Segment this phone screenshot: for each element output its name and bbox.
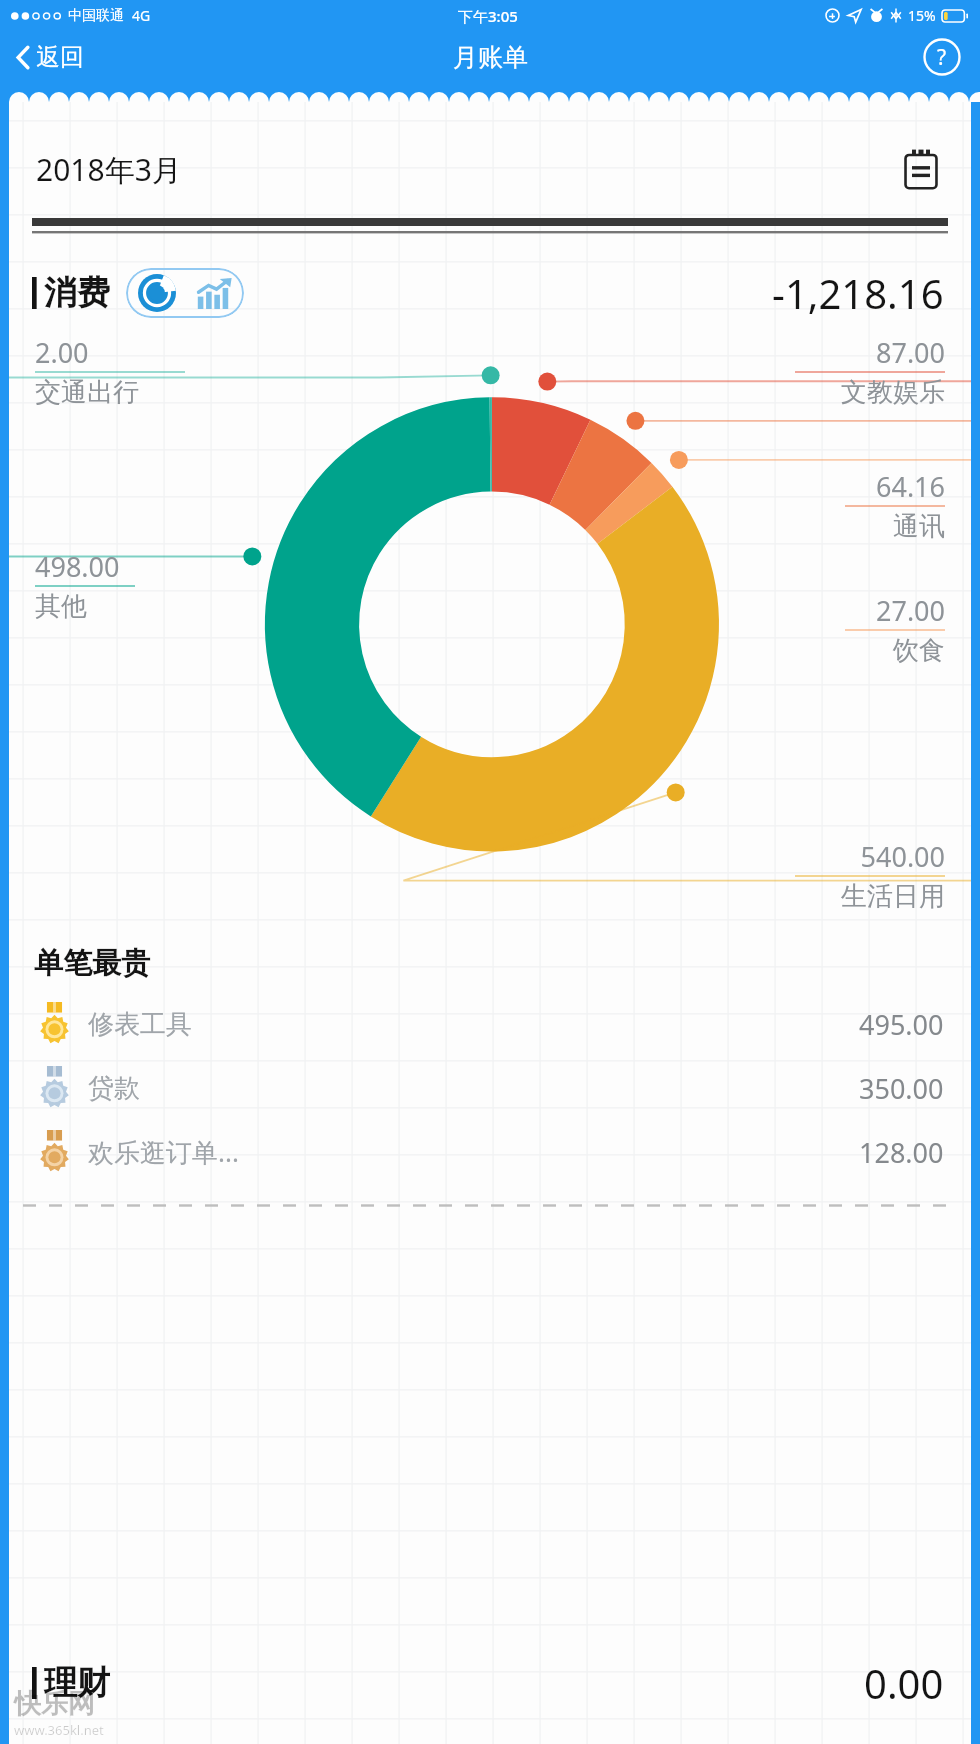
button[interactable]: 贷款: [9, 1056, 971, 1120]
staticText: 350.00: [859, 1070, 944, 1107]
staticText: 128.00: [859, 1134, 944, 1171]
staticText: 中国联通: [68, 7, 124, 25]
button[interactable]: 返回: [0, 36, 102, 78]
staticText: 修表工具: [88, 1008, 192, 1041]
staticText: 87.00: [875, 334, 945, 371]
staticText: 27.00: [875, 592, 945, 629]
staticText: 贷款: [88, 1072, 140, 1105]
staticText: 返回: [36, 42, 84, 72]
button[interactable]: Switch chart type: [126, 268, 244, 318]
staticText: 4G: [132, 6, 151, 25]
staticText: 消费: [44, 272, 110, 314]
staticText: 理财: [44, 1662, 110, 1704]
staticText: 15%: [908, 6, 936, 25]
staticText: 快乐网: [14, 1687, 95, 1721]
button[interactable]: Bill details: [898, 146, 944, 192]
staticText: 540.00: [860, 838, 945, 875]
staticText: 2.00: [35, 334, 89, 371]
staticText: 欢乐逛订单...: [88, 1134, 239, 1170]
staticText: 生活日用: [841, 880, 945, 913]
staticText: 月账单: [453, 42, 528, 73]
staticText: ?: [937, 43, 947, 72]
staticText: -1,218.16: [772, 266, 944, 320]
staticText: 文教娱乐: [841, 376, 945, 409]
staticText: www.365kl.net: [14, 1721, 104, 1739]
staticText: 0.00: [864, 1656, 944, 1710]
staticText: 其他: [35, 590, 87, 623]
staticText: 2018年3月: [36, 149, 182, 190]
staticText: 下午3:05: [458, 6, 518, 26]
button[interactable]: Help: [921, 36, 963, 78]
staticText: 单笔最贵: [34, 945, 150, 982]
staticText: 交通出行: [35, 376, 139, 409]
button[interactable]: 欢乐逛订单...: [9, 1120, 971, 1184]
staticText: 498.00: [35, 548, 120, 585]
staticText: 通讯: [893, 510, 945, 543]
button[interactable]: 修表工具: [9, 992, 971, 1056]
staticText: 饮食: [893, 634, 945, 667]
staticText: 64.16: [875, 468, 945, 505]
staticText: 495.00: [859, 1006, 944, 1043]
